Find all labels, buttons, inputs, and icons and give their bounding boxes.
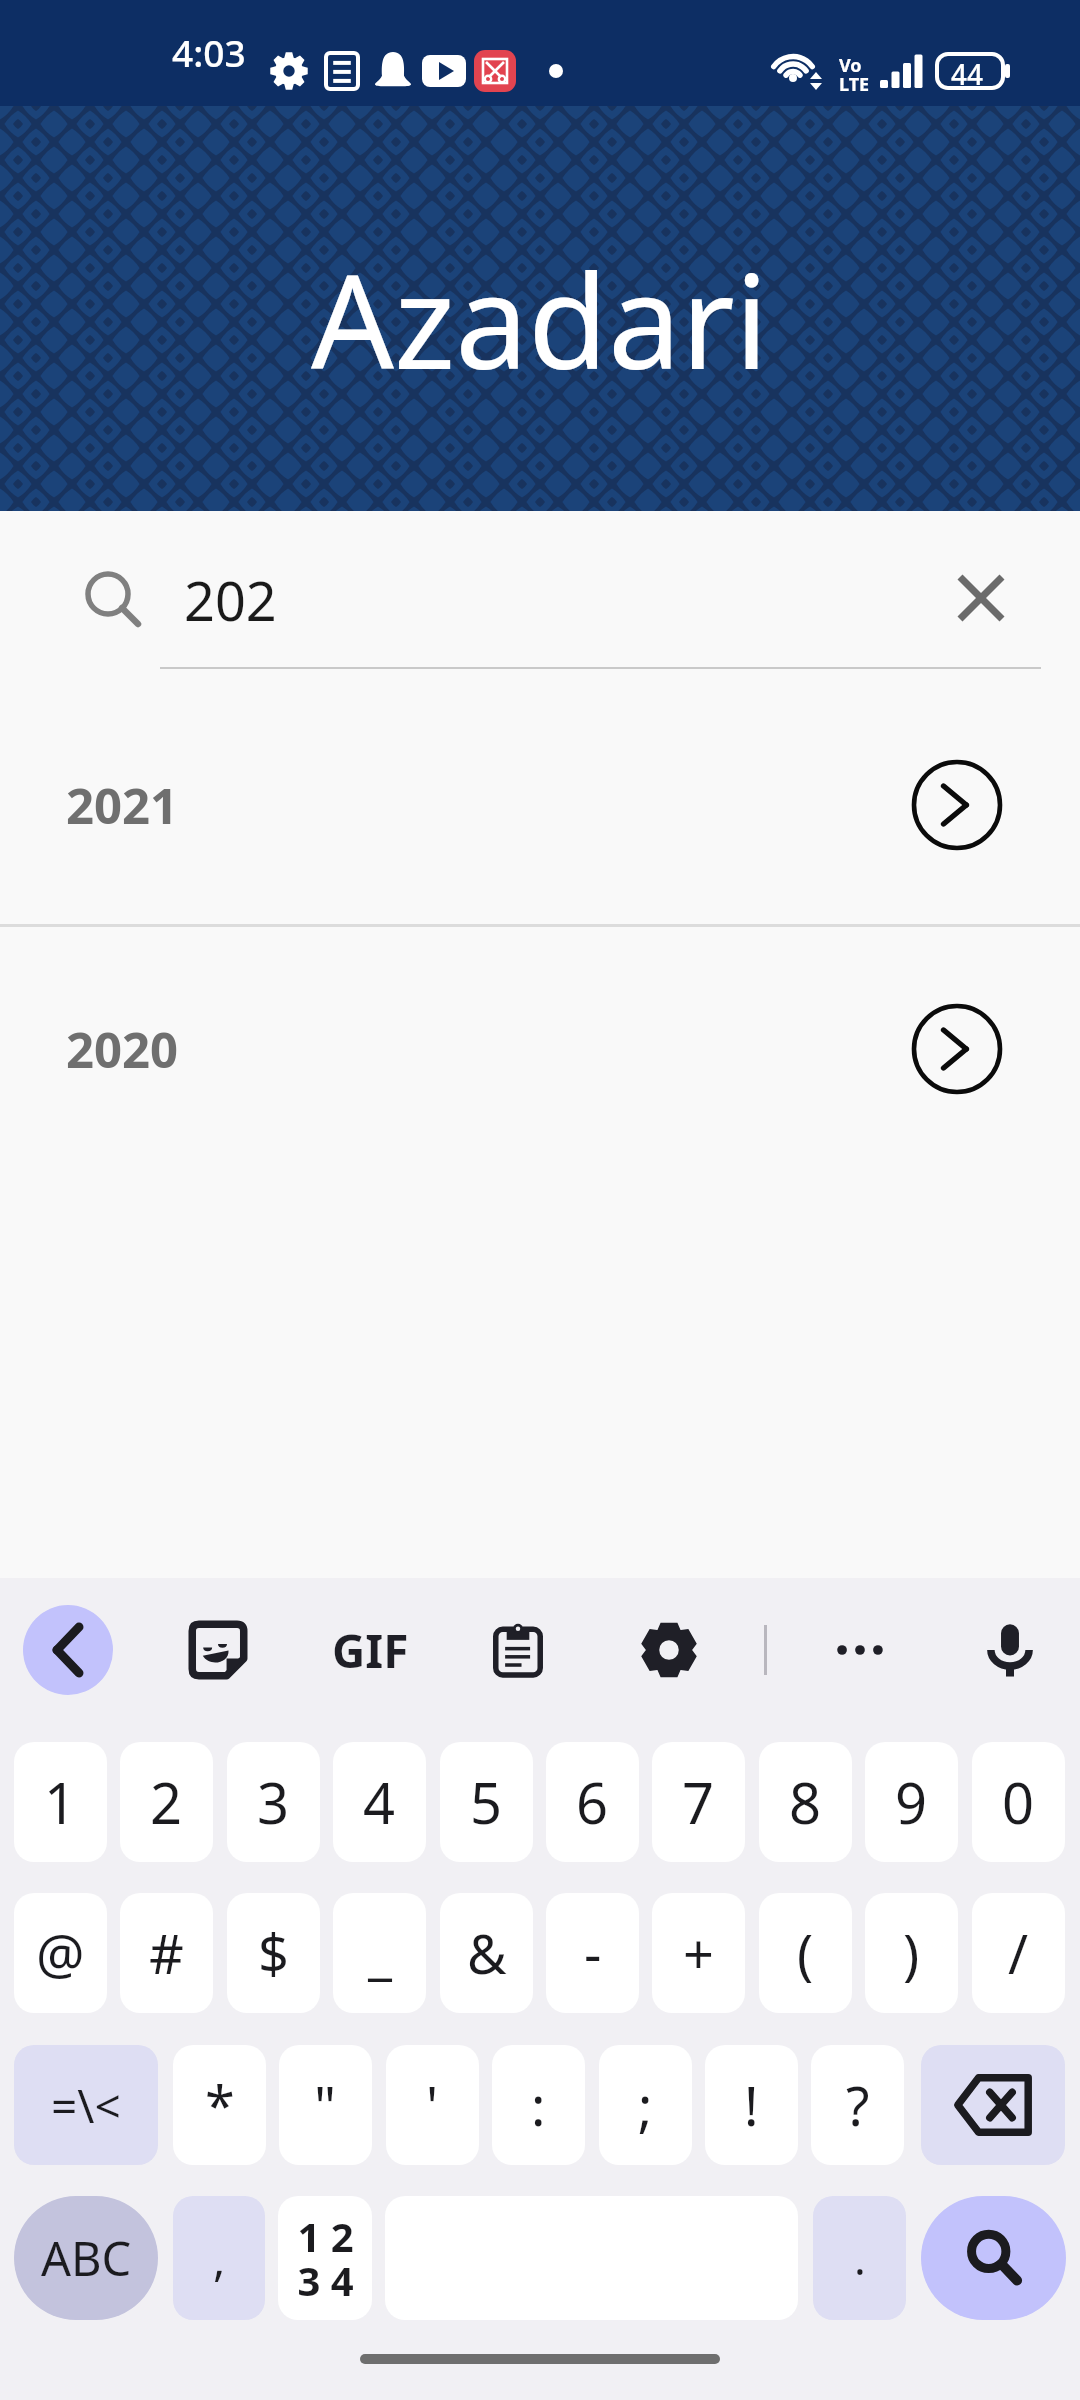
staticText: # (149, 1916, 184, 1990)
button[interactable]: Open 2021 (912, 760, 1002, 850)
button[interactable]: 2020 (0, 944, 1080, 1168)
staticText: + (683, 1916, 714, 1990)
button[interactable]: 0 (972, 1742, 1065, 1862)
button[interactable]: ? (811, 2045, 904, 2165)
staticText: ( (797, 1916, 814, 1990)
staticText: 4 (363, 1764, 396, 1840)
staticText: 8 (789, 1764, 822, 1840)
staticText: ! (744, 2068, 759, 2142)
staticText: =\< (51, 2074, 121, 2137)
staticText: ' (426, 2068, 439, 2142)
button[interactable]: - (546, 1893, 639, 2013)
button[interactable]: @ (14, 1893, 107, 2013)
button[interactable]: , (173, 2196, 265, 2320)
staticText: ) (903, 1916, 920, 1990)
staticText: 202 (184, 563, 277, 637)
button[interactable]: 7 (652, 1742, 745, 1862)
staticText: 4:03 (172, 27, 246, 77)
button[interactable]: Stickers (173, 1605, 263, 1695)
button[interactable]: 4 (333, 1742, 426, 1862)
button[interactable]: + (652, 1893, 745, 2013)
button[interactable]: _ (333, 1893, 426, 2013)
button[interactable]: 2 (120, 1742, 213, 1862)
button[interactable]: Settings (624, 1605, 714, 1695)
staticText: 7 (682, 1764, 715, 1840)
button[interactable]: 1 2 3 4 (278, 2196, 372, 2320)
button[interactable]: ( (759, 1893, 852, 2013)
staticText: 1 2 3 4 (297, 2209, 354, 2307)
button[interactable]: =\< (14, 2045, 158, 2165)
staticText: * (205, 2068, 235, 2142)
staticText: 0 (1002, 1764, 1035, 1840)
staticText: 2 (150, 1764, 183, 1840)
button[interactable]: ) (865, 1893, 958, 2013)
staticText: $ (258, 1916, 289, 1990)
staticText: ABC (41, 2226, 132, 2290)
button[interactable]: # (120, 1893, 213, 2013)
staticText: 9 (895, 1764, 928, 1840)
staticText: 6 (576, 1764, 609, 1840)
button[interactable]: 2021 (0, 700, 1080, 924)
button[interactable]: & (440, 1893, 533, 2013)
button[interactable]: . (813, 2196, 906, 2320)
staticText: ; (638, 2068, 653, 2142)
button[interactable]: More options (815, 1605, 905, 1695)
staticText: 5 (470, 1764, 503, 1840)
button[interactable]: Clear search (949, 566, 1013, 630)
staticText: _ (368, 1916, 392, 1990)
button[interactable]: $ (227, 1893, 320, 2013)
button[interactable]: Search (82, 569, 142, 629)
button[interactable]: 3 (227, 1742, 320, 1862)
staticText: & (467, 1916, 507, 1990)
staticText: " (314, 2068, 337, 2142)
staticText: 2020 (66, 1016, 179, 1083)
button[interactable]: Voice input (965, 1605, 1055, 1695)
staticText: ? (846, 2068, 870, 2142)
button[interactable]: 9 (865, 1742, 958, 1862)
button[interactable]: / (972, 1893, 1065, 2013)
staticText: / (1008, 1916, 1029, 1990)
staticText: : (531, 2068, 546, 2142)
button[interactable]: ; (599, 2045, 692, 2165)
button[interactable]: * (173, 2045, 266, 2165)
button[interactable]: 5 (440, 1742, 533, 1862)
staticText: 2021 (66, 772, 179, 839)
staticText: 3 (257, 1764, 290, 1840)
staticText: @ (36, 1916, 85, 1990)
button[interactable]: 6 (546, 1742, 639, 1862)
staticText: GIF (332, 1619, 409, 1682)
button[interactable]: Back (23, 1605, 113, 1695)
staticText: 1 (44, 1764, 77, 1840)
button[interactable]: : (492, 2045, 585, 2165)
button[interactable]: GIF (325, 1605, 415, 1695)
button[interactable]: ABC (14, 2196, 158, 2320)
button[interactable]: Clipboard (473, 1605, 563, 1695)
button[interactable]: Backspace (921, 2045, 1065, 2165)
button[interactable]: ! (705, 2045, 798, 2165)
staticText: Vo LTE (839, 53, 870, 96)
button[interactable]: Open 2020 (912, 1004, 1002, 1094)
staticText: 44 (951, 55, 984, 93)
button[interactable]: Search (921, 2196, 1066, 2320)
staticText: . (854, 2228, 866, 2288)
button[interactable]: 8 (759, 1742, 852, 1862)
staticText: Azadari (311, 230, 769, 407)
button[interactable]: " (279, 2045, 372, 2165)
button[interactable]: 1 (14, 1742, 107, 1862)
button[interactable]: ' (386, 2045, 479, 2165)
staticText: , (213, 2227, 226, 2290)
staticText: - (584, 1916, 602, 1990)
